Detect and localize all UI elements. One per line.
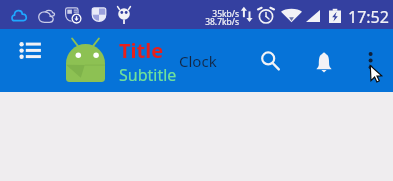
staticText: 35kb/s: [194, 8, 239, 20]
staticText: 17:52: [348, 6, 389, 28]
staticText: 38.7kb/s: [194, 16, 239, 28]
staticText: Subtitle: [119, 64, 177, 86]
button[interactable]: Search: [251, 42, 291, 82]
button[interactable]: More options: [355, 38, 387, 70]
button[interactable]: Menu: [9, 42, 35, 68]
staticText: Title: [119, 37, 164, 64]
staticText: Clock: [179, 51, 217, 71]
button[interactable]: Notifications: [304, 42, 344, 82]
